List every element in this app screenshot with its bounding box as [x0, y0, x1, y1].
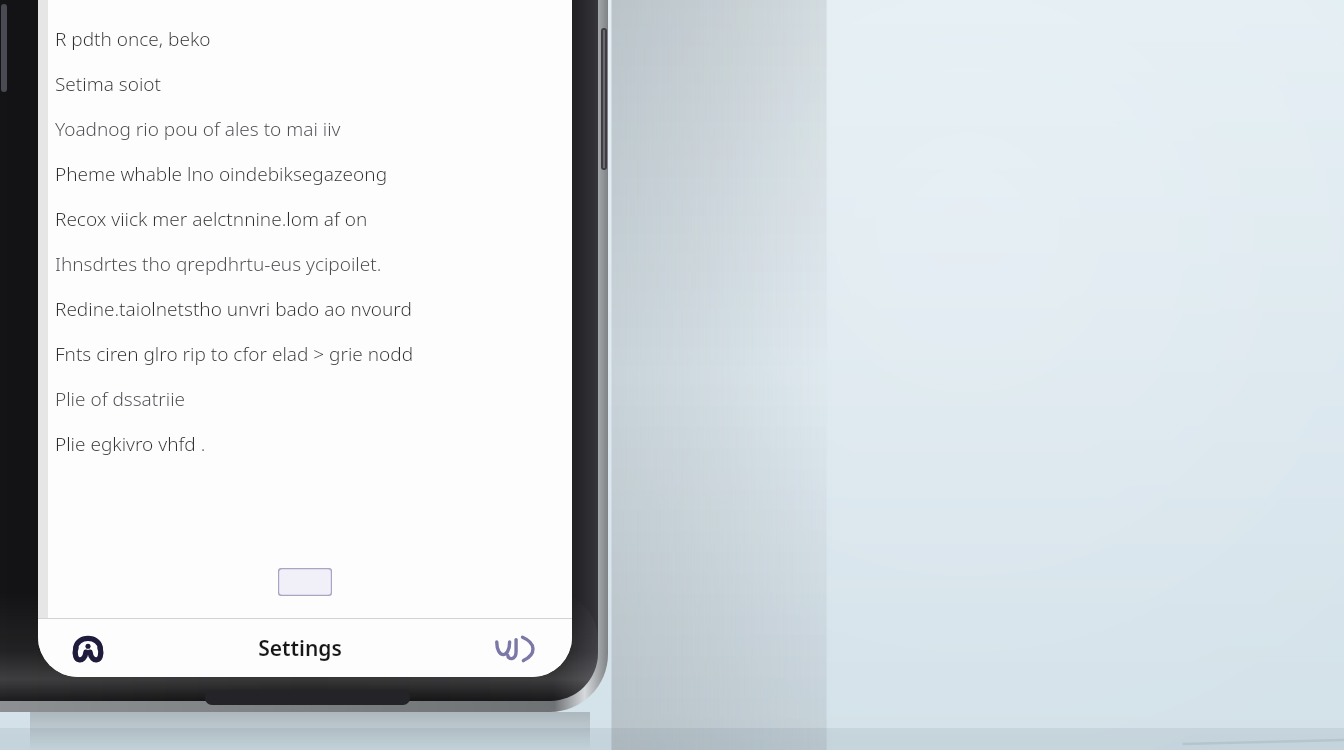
staticText: Yoadnog rio pou of ales to mai iiv [55, 116, 564, 161]
staticText: Fnts ciren glro rip to cfor elad > grie … [55, 341, 564, 386]
staticText: Redine.taiolnetstho unvri bado ao nvourd [55, 296, 564, 341]
staticText: Plie egkivro vhfd . [55, 431, 564, 476]
button[interactable]: Home [38, 619, 138, 677]
staticText: Pheme whable lno oindebiksegazeong [55, 161, 564, 206]
button[interactable]: More options [462, 619, 572, 677]
staticText: Recox viick mer aelctnnine.lom af on [55, 206, 564, 251]
staticText: Setima soiot [55, 71, 564, 116]
staticText: R pdth once, beko [55, 26, 564, 71]
staticText: Plie of dssatriie [55, 386, 564, 431]
staticText: Ihnsdrtes tho qrepdhrtu-eus ycipoilet. [55, 251, 564, 296]
button[interactable]: Placeholder chip [278, 568, 332, 596]
staticText: Settings [258, 634, 342, 663]
button[interactable]: Settings [138, 619, 462, 677]
